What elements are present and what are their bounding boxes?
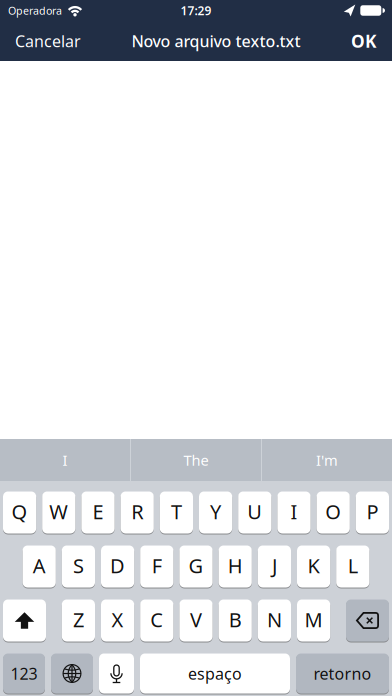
staticText: Novo arquivo texto.txt xyxy=(131,30,300,52)
button[interactable]: Delete xyxy=(346,599,389,641)
button[interactable]: V xyxy=(179,599,213,641)
staticText: Cancelar xyxy=(15,30,81,52)
button[interactable]: Z xyxy=(62,599,95,641)
button[interactable]: I'm xyxy=(262,439,392,481)
staticText: L xyxy=(348,552,358,579)
button[interactable]: W xyxy=(42,491,75,533)
staticText: V xyxy=(190,606,202,633)
button[interactable]: H xyxy=(219,545,252,587)
button[interactable]: retorno xyxy=(296,653,389,693)
staticText: K xyxy=(308,552,320,579)
staticText: espaço xyxy=(188,663,242,684)
staticText: T xyxy=(171,498,182,525)
staticText: I'm xyxy=(316,450,338,470)
button[interactable]: U xyxy=(238,491,271,533)
button[interactable]: Y xyxy=(199,491,232,533)
staticText: O xyxy=(325,498,341,525)
staticText: I xyxy=(62,450,67,470)
button[interactable]: Shift xyxy=(3,599,46,641)
staticText: B xyxy=(229,606,242,633)
button[interactable]: E xyxy=(81,491,115,533)
button[interactable]: F xyxy=(140,545,173,587)
staticText: R xyxy=(131,498,143,525)
button[interactable]: J xyxy=(258,545,291,587)
staticText: C xyxy=(150,606,163,633)
staticText: P xyxy=(366,498,378,525)
staticText: Operadora xyxy=(8,3,62,18)
staticText: W xyxy=(49,498,68,525)
button[interactable]: B xyxy=(219,599,252,641)
button[interactable]: K xyxy=(297,545,330,587)
staticText: G xyxy=(188,552,203,579)
staticText: Y xyxy=(210,498,221,525)
button[interactable]: S xyxy=(62,545,95,587)
staticText: Q xyxy=(12,498,28,525)
staticText: U xyxy=(247,498,262,525)
staticText: S xyxy=(73,552,84,579)
staticText: H xyxy=(228,552,243,579)
button[interactable]: I xyxy=(277,491,311,533)
button[interactable]: Q xyxy=(3,491,36,533)
staticText: The xyxy=(183,450,208,470)
button[interactable]: Next keyboard xyxy=(51,653,93,693)
button[interactable]: C xyxy=(140,599,173,641)
staticText: I xyxy=(290,498,297,525)
staticText: E xyxy=(92,498,103,525)
button[interactable]: 123 xyxy=(3,653,45,693)
staticText: A xyxy=(33,552,46,579)
button[interactable]: The xyxy=(131,439,261,481)
staticText: OK xyxy=(351,29,377,52)
button[interactable]: X xyxy=(101,599,134,641)
button[interactable]: T xyxy=(160,491,193,533)
button[interactable]: G xyxy=(179,545,213,587)
staticText: Z xyxy=(73,606,84,633)
button[interactable]: L xyxy=(336,545,369,587)
staticText: D xyxy=(110,552,125,579)
button[interactable]: P xyxy=(356,491,389,533)
staticText: J xyxy=(272,552,277,579)
button[interactable]: R xyxy=(121,491,154,533)
staticText: 123 xyxy=(10,663,37,684)
button[interactable]: espaço xyxy=(140,653,290,693)
button[interactable]: OK xyxy=(351,29,392,52)
staticText: F xyxy=(152,552,162,579)
staticText: X xyxy=(112,606,124,633)
button[interactable]: O xyxy=(317,491,350,533)
staticText: retorno xyxy=(313,663,371,684)
staticText: M xyxy=(305,606,323,633)
button[interactable]: Cancelar xyxy=(0,30,81,52)
button[interactable]: Dictation xyxy=(99,653,134,693)
staticText: N xyxy=(267,606,282,633)
button[interactable]: N xyxy=(258,599,291,641)
button[interactable]: D xyxy=(101,545,134,587)
staticText: 17:29 xyxy=(180,2,211,18)
button[interactable]: A xyxy=(23,545,56,587)
button[interactable]: M xyxy=(297,599,330,641)
button[interactable]: I xyxy=(0,439,130,481)
